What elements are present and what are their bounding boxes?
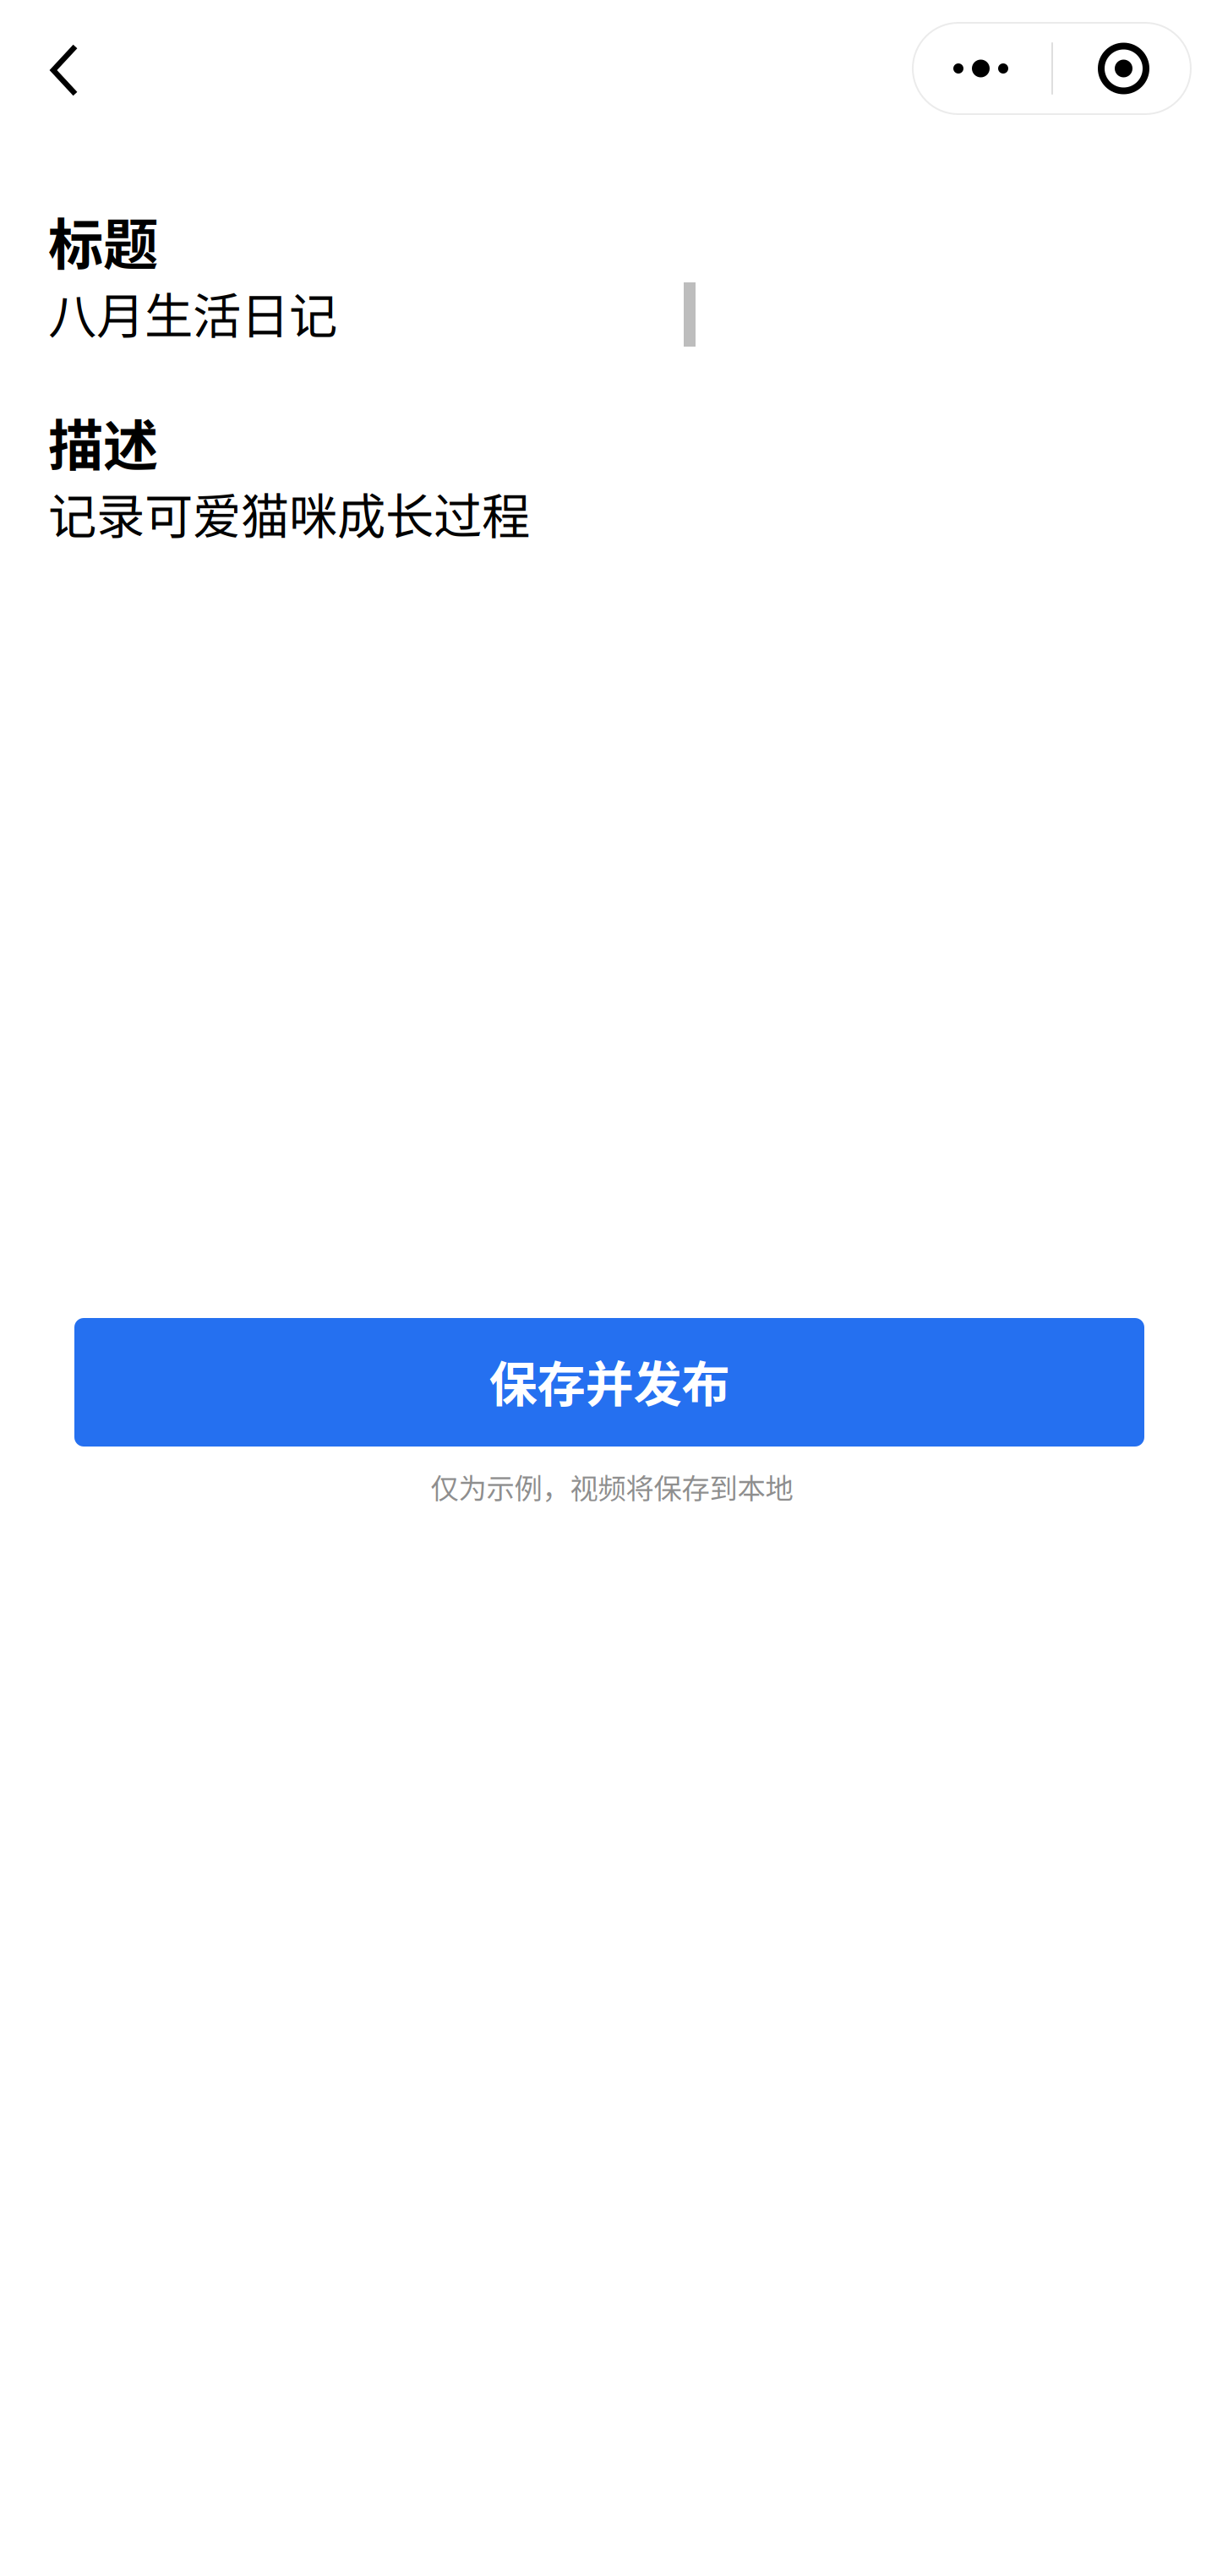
staticText: 仅为示例，视频将保存到本地 [431, 1466, 793, 1507]
button[interactable]: 保存并发布 [74, 1318, 1144, 1447]
button[interactable]: Back [17, 23, 112, 118]
staticText: 描述 [48, 402, 158, 482]
staticText: 记录可爱猫咪成长过程 [48, 478, 530, 548]
button[interactable]: More options [913, 23, 1191, 114]
staticText: 保存并发布 [489, 1345, 730, 1416]
staticText: 标题 [48, 200, 158, 280]
staticText: 八月生活日记 [48, 277, 337, 347]
